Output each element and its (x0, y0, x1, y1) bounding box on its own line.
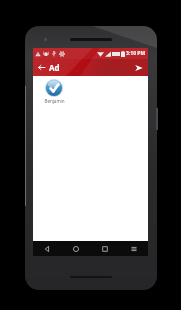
button[interactable]: Back (36, 62, 47, 73)
staticText: Ad (49, 62, 60, 73)
button[interactable]: Send (133, 62, 145, 74)
button[interactable]: Benjamin (40, 79, 68, 104)
button[interactable]: Menu (119, 241, 148, 256)
button[interactable]: Recents (90, 241, 119, 256)
button[interactable]: Back (33, 241, 61, 256)
button[interactable]: Home (61, 241, 90, 256)
staticText: Benjamin (44, 98, 65, 104)
staticText: 3:10 PM (126, 50, 146, 57)
